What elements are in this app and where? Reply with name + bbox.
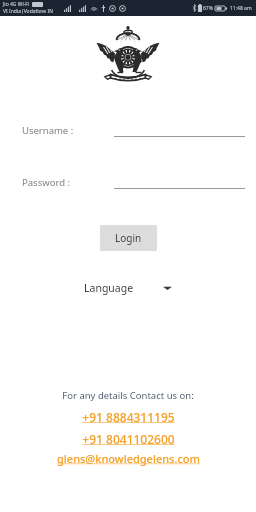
button[interactable]: +91 8884311195 bbox=[80, 408, 177, 426]
staticText: 11:48 am bbox=[230, 5, 252, 12]
button[interactable] bbox=[114, 175, 245, 189]
staticText: +91 8041102600 bbox=[82, 431, 175, 447]
staticText: Password : bbox=[22, 176, 70, 189]
staticText: 67% bbox=[203, 5, 213, 12]
other: Organisation crest bbox=[90, 25, 166, 87]
staticText: VI India|Vodafone IN bbox=[3, 8, 53, 15]
staticText: Language bbox=[84, 281, 134, 295]
staticText: Username : bbox=[22, 124, 74, 137]
button[interactable]: +91 8041102600 bbox=[80, 430, 177, 448]
staticText: Jio 4G Wi-Fi bbox=[3, 1, 30, 8]
button[interactable]: Language bbox=[84, 277, 172, 299]
other: Open language dropdown bbox=[163, 285, 172, 291]
staticText: glens@knowledgelens.com bbox=[57, 451, 200, 466]
button[interactable]: Login bbox=[100, 225, 157, 251]
staticText: +91 8884311195 bbox=[82, 409, 175, 425]
staticText: Login bbox=[115, 231, 142, 245]
button[interactable]: glens@knowledgelens.com bbox=[55, 450, 202, 467]
button[interactable] bbox=[114, 123, 245, 137]
staticText: For any details Contact us on: bbox=[62, 389, 194, 402]
